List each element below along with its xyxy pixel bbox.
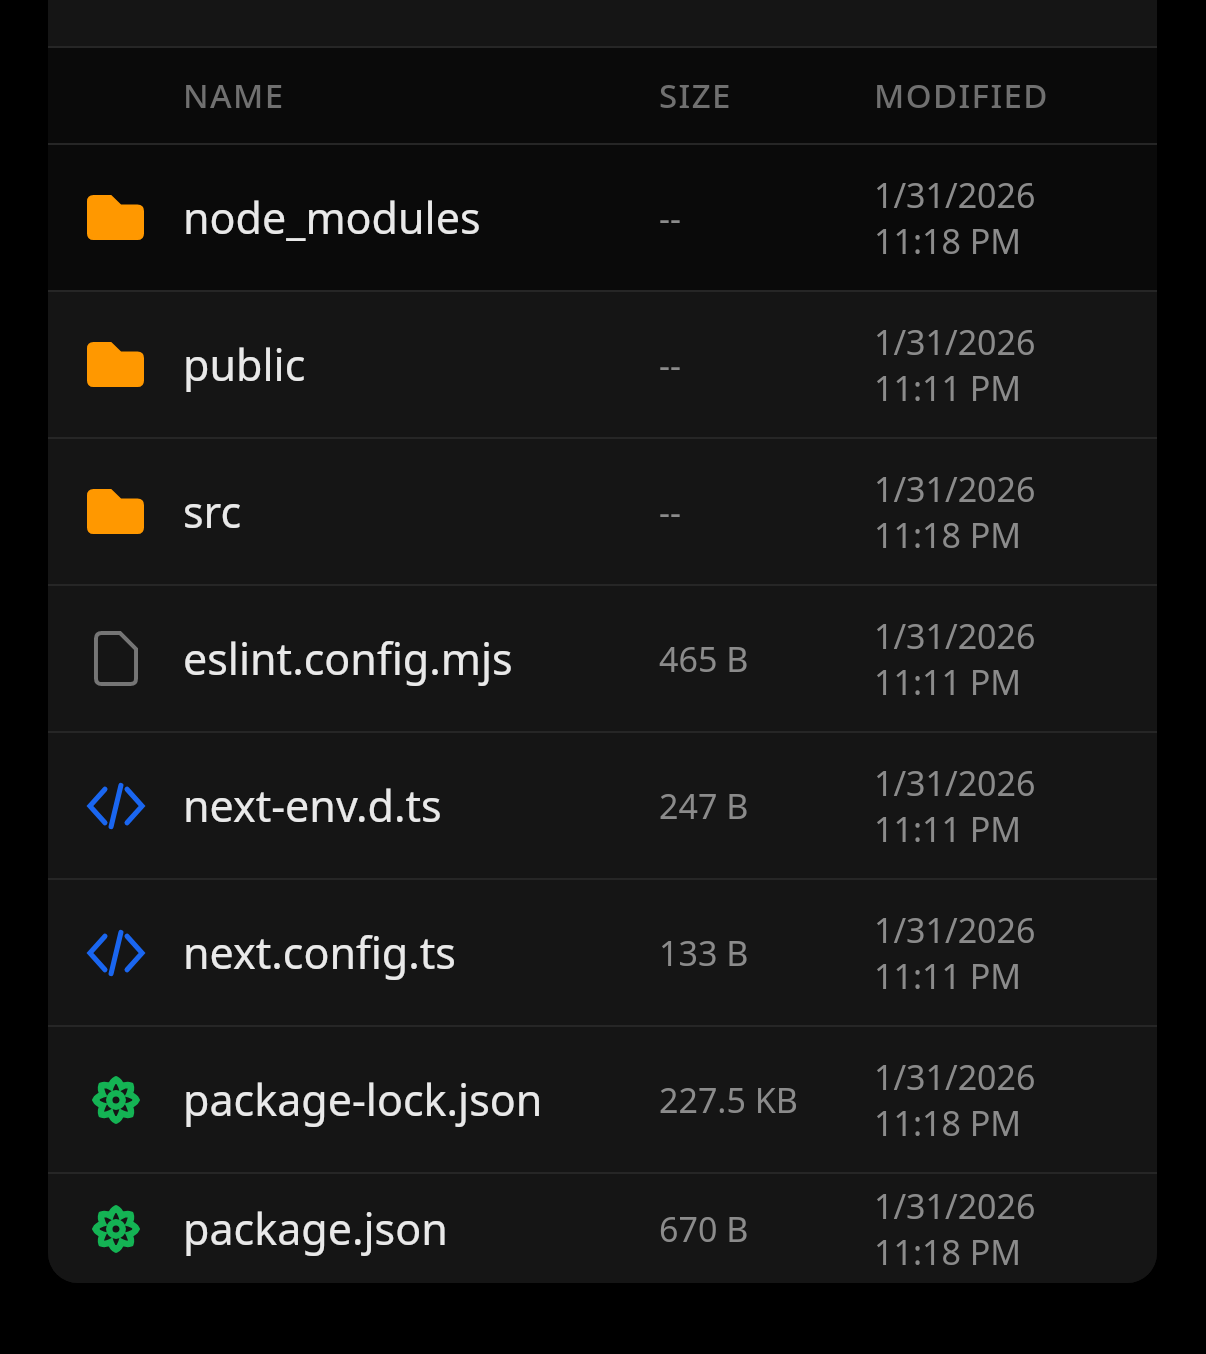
staticText: -- (659, 489, 681, 535)
staticText: 11:18 PM (874, 1100, 1022, 1146)
staticText: 465 B (659, 636, 749, 682)
staticText: NAME (183, 73, 285, 118)
staticText: 11:11 PM (874, 806, 1022, 852)
staticText: 11:18 PM (874, 1229, 1022, 1275)
staticText: -- (659, 342, 681, 388)
staticText: 670 B (659, 1206, 749, 1252)
staticText: node_modules (183, 188, 481, 247)
staticText: 1/31/2026 (874, 319, 1036, 365)
staticText: next.config.ts (183, 923, 456, 982)
staticText: 1/31/2026 (874, 172, 1036, 218)
staticText: 1/31/2026 (874, 1183, 1036, 1229)
button[interactable]: package.json (48, 1174, 1157, 1283)
staticText: eslint.config.mjs (183, 629, 513, 688)
staticText: package.json (183, 1199, 448, 1258)
staticText: MODIFIED (874, 73, 1049, 118)
staticText: SIZE (659, 73, 732, 118)
button[interactable]: next.config.ts (48, 880, 1157, 1025)
staticText: 1/31/2026 (874, 760, 1036, 806)
staticText: 227.5 KB (659, 1077, 798, 1123)
staticText: 133 B (659, 930, 749, 976)
staticText: public (183, 335, 306, 394)
button[interactable]: src (48, 439, 1157, 584)
button[interactable]: next-env.d.ts (48, 733, 1157, 878)
staticText: 247 B (659, 783, 749, 829)
staticText: 11:11 PM (874, 953, 1022, 999)
staticText: next-env.d.ts (183, 776, 442, 835)
button[interactable]: node_modules (48, 145, 1157, 290)
staticText: src (183, 482, 242, 541)
staticText: 11:11 PM (874, 365, 1022, 411)
staticText: -- (659, 195, 681, 241)
staticText: 1/31/2026 (874, 466, 1036, 512)
staticText: 1/31/2026 (874, 907, 1036, 953)
staticText: 11:18 PM (874, 218, 1022, 264)
staticText: 1/31/2026 (874, 1054, 1036, 1100)
staticText: 1/31/2026 (874, 613, 1036, 659)
staticText: 11:18 PM (874, 512, 1022, 558)
button[interactable]: public (48, 292, 1157, 437)
button[interactable]: package-lock.json (48, 1027, 1157, 1172)
staticText: package-lock.json (183, 1070, 543, 1129)
staticText: 11:11 PM (874, 659, 1022, 705)
button[interactable]: eslint.config.mjs (48, 586, 1157, 731)
